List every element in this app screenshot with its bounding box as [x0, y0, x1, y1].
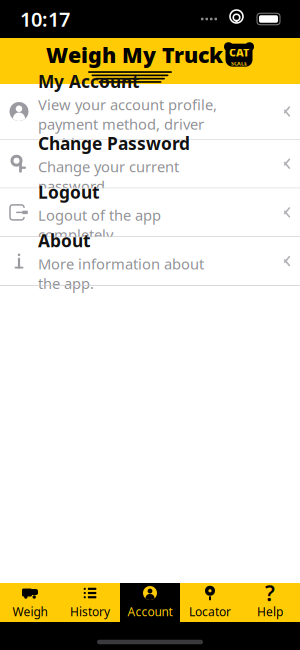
button[interactable]: My Account [0, 84, 300, 140]
button[interactable]: Account [120, 583, 180, 622]
staticText: 10:17 [20, 6, 70, 32]
staticText: Weigh My Truck [46, 40, 223, 69]
staticText: ? [265, 579, 275, 607]
button[interactable]: Weigh [0, 583, 60, 622]
staticText: Locator [189, 603, 231, 619]
staticText: Account [127, 603, 172, 619]
staticText: More information about the app. [38, 254, 204, 293]
staticText: Change Password [38, 132, 190, 155]
staticText: History [70, 603, 110, 619]
staticText: View your account profile, payment metho… [38, 95, 217, 153]
button[interactable]: ? [240, 583, 300, 622]
staticText: CAT [229, 45, 249, 59]
staticText: SCALE [231, 60, 247, 67]
button[interactable]: About [0, 237, 300, 286]
button[interactable]: History [60, 583, 120, 622]
button[interactable]: Change Password [0, 140, 300, 188]
staticText: About [38, 229, 91, 252]
button[interactable]: Locator [180, 583, 240, 622]
staticText: Logout [38, 180, 100, 203]
staticText: Weigh [12, 603, 47, 619]
staticText: Logout of the app completely. [38, 205, 161, 244]
staticText: Help [257, 603, 283, 619]
staticText: Change your current password. [38, 157, 179, 196]
button[interactable]: Logout [0, 188, 300, 237]
staticText: My Account [38, 70, 140, 93]
